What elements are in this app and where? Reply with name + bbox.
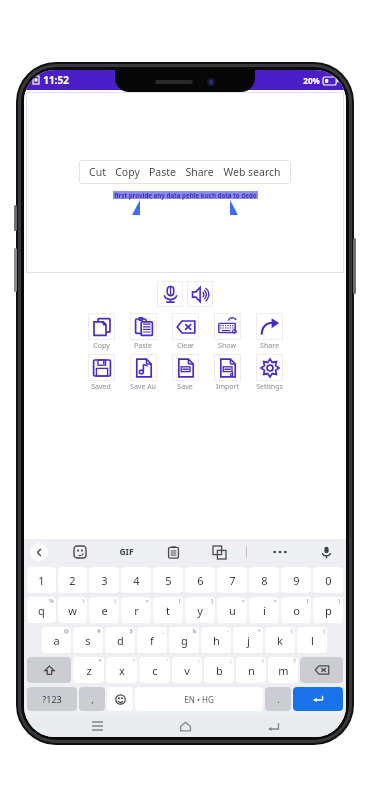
button[interactable]: Cut xyxy=(89,165,106,179)
button[interactable]: More options xyxy=(273,550,287,554)
button[interactable]: p xyxy=(313,597,343,623)
staticText: 6 xyxy=(197,573,204,588)
button[interactable]: EN • HG xyxy=(135,687,263,711)
button[interactable]: Translate xyxy=(213,546,226,559)
staticText: Cut xyxy=(89,165,106,179)
button[interactable]: m xyxy=(268,657,298,683)
staticText: $ xyxy=(129,627,133,634)
staticText: " xyxy=(132,657,135,664)
button[interactable]: w xyxy=(58,597,87,623)
button[interactable]: Save Au xyxy=(124,354,162,392)
button[interactable]: Paste xyxy=(149,165,176,179)
button[interactable]: z xyxy=(73,657,104,683)
button[interactable]: Recents xyxy=(82,715,112,737)
staticText: Show xyxy=(218,341,236,351)
button[interactable]: Save xyxy=(166,354,204,392)
staticText: h xyxy=(213,633,220,648)
button[interactable]: 7 xyxy=(217,567,247,593)
button[interactable]: . xyxy=(265,687,291,711)
button[interactable]: 5 xyxy=(153,567,183,593)
button[interactable]: Speak xyxy=(187,281,213,307)
staticText: i xyxy=(263,603,266,618)
button[interactable]: Home xyxy=(170,715,200,737)
button[interactable]: Voice input xyxy=(157,281,183,307)
button[interactable]: r xyxy=(121,597,151,623)
button[interactable]: 3 xyxy=(89,567,119,593)
button[interactable]: 8 xyxy=(249,567,279,593)
staticText: \ xyxy=(82,597,85,604)
button[interactable]: Settings xyxy=(250,354,288,392)
button[interactable]: g xyxy=(169,627,199,653)
button[interactable]: Stickers xyxy=(73,545,87,559)
button[interactable]: 1 xyxy=(27,567,56,593)
button[interactable]: 9 xyxy=(281,567,311,593)
button[interactable]: , xyxy=(79,687,105,711)
staticText: Save Au xyxy=(130,382,156,392)
staticText: o xyxy=(293,603,300,618)
button[interactable]: Clear xyxy=(166,313,204,351)
button[interactable]: y xyxy=(185,597,215,623)
button[interactable]: q xyxy=(27,597,56,623)
button[interactable]: o xyxy=(281,597,311,623)
button[interactable]: Share xyxy=(250,313,288,351)
staticText: j xyxy=(247,633,250,648)
button[interactable]: Import xyxy=(208,354,246,392)
staticText: e xyxy=(101,603,108,618)
button[interactable]: d xyxy=(105,627,135,653)
staticText: v xyxy=(184,663,190,678)
button[interactable]: l xyxy=(297,627,327,653)
staticText: f xyxy=(150,633,154,648)
button[interactable]: e xyxy=(89,597,119,623)
button[interactable]: t xyxy=(153,597,183,623)
button[interactable]: Voice input xyxy=(320,546,333,559)
staticText: GIF xyxy=(119,546,134,558)
button[interactable]: u xyxy=(217,597,247,623)
button[interactable]: Back xyxy=(258,715,288,737)
button[interactable]: Share xyxy=(185,165,214,179)
button[interactable]: 6 xyxy=(185,567,215,593)
button[interactable]: Paste xyxy=(124,313,162,351)
staticText: c xyxy=(152,663,158,678)
button[interactable]: Back xyxy=(30,543,48,561)
button[interactable]: a xyxy=(42,627,71,653)
button[interactable]: Emoji xyxy=(107,687,133,711)
button[interactable]: f xyxy=(137,627,167,653)
button[interactable]: Show xyxy=(208,313,246,351)
staticText: n xyxy=(248,663,255,678)
button[interactable]: Copy xyxy=(115,165,140,179)
button[interactable]: Shift xyxy=(27,657,71,683)
staticText: u xyxy=(229,603,236,618)
button[interactable]: Enter xyxy=(293,687,343,711)
staticText: q xyxy=(38,603,45,618)
button[interactable]: n xyxy=(236,657,266,683)
staticText: l xyxy=(311,633,314,648)
button[interactable]: i xyxy=(249,597,279,623)
staticText: Share xyxy=(260,341,279,351)
button[interactable]: Copy xyxy=(82,313,120,351)
button[interactable]: b xyxy=(204,657,234,683)
button[interactable]: v xyxy=(172,657,202,683)
staticText: Clear xyxy=(177,341,194,351)
button[interactable]: ?123 xyxy=(27,687,77,711)
button[interactable]: Backspace xyxy=(300,657,343,683)
staticText: } xyxy=(338,597,341,604)
staticText: - xyxy=(227,627,229,634)
staticText: s xyxy=(85,633,91,648)
button[interactable]: Saved xyxy=(82,354,120,392)
button[interactable]: s xyxy=(73,627,103,653)
button[interactable]: 2 xyxy=(58,567,87,593)
button[interactable]: 4 xyxy=(121,567,151,593)
staticText: x xyxy=(119,663,125,678)
button[interactable]: GIF xyxy=(119,546,134,558)
button[interactable]: Clipboard xyxy=(167,546,180,559)
button[interactable]: c xyxy=(139,657,170,683)
button[interactable]: j xyxy=(233,627,263,653)
staticText: Import xyxy=(216,382,239,392)
button[interactable]: h xyxy=(201,627,231,653)
button[interactable]: Web search xyxy=(223,165,281,179)
staticText: g xyxy=(181,633,188,648)
staticText: ( xyxy=(291,627,293,634)
button[interactable]: x xyxy=(106,657,137,683)
button[interactable]: k xyxy=(265,627,295,653)
button[interactable]: 0 xyxy=(313,567,343,593)
